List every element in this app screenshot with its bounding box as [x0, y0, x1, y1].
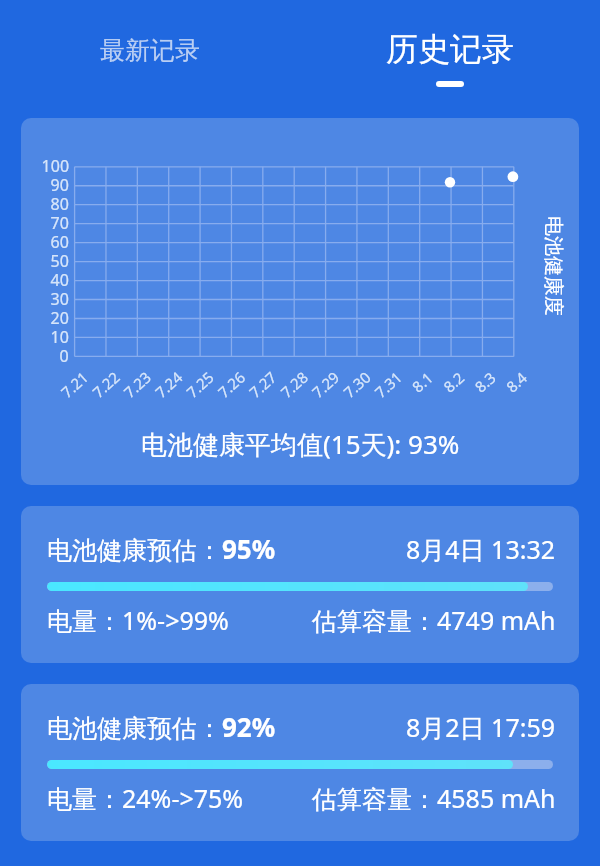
staticText: 8月4日 13:32 [406, 532, 556, 566]
staticText: 电池健康平均值(15天): 93% [141, 426, 460, 462]
staticText: 电量：24%->75% [47, 781, 244, 815]
button[interactable]: 电池健康预估： [21, 684, 579, 841]
staticText: 历史记录 [386, 29, 514, 69]
staticText: 8月2日 17:59 [406, 710, 556, 744]
button[interactable]: 电池健康度历史曲线图 [21, 118, 579, 485]
button[interactable]: 历史记录 [300, 0, 600, 100]
button[interactable]: 电池健康预估： [21, 506, 579, 663]
button[interactable]: 最新记录 [0, 0, 300, 100]
staticText: 电池健康预估： [47, 535, 222, 566]
staticText: 估算容量：4585 mAh [312, 781, 556, 815]
staticText: 最新记录 [100, 35, 200, 66]
staticText: 95% [222, 531, 276, 566]
staticText: 电量：1%->99% [47, 603, 229, 637]
staticText: 估算容量：4749 mAh [312, 603, 556, 637]
staticText: 92% [222, 709, 276, 744]
staticText: 电池健康预估： [47, 713, 222, 744]
